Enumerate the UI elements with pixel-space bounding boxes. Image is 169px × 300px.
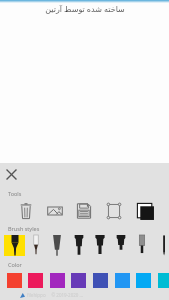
staticText: Tools xyxy=(8,190,22,197)
button[interactable]: Brush 3 xyxy=(49,235,65,256)
button[interactable]: Insert image xyxy=(42,200,68,222)
button[interactable]: Brush 5 xyxy=(92,235,108,256)
staticText: ساخته شده توسط آرتین xyxy=(45,3,125,14)
button[interactable]: Fill colour xyxy=(132,200,158,222)
button[interactable]: Brush 8 xyxy=(156,235,169,256)
staticText: filehippo © 2019-2020 ... xyxy=(27,292,84,298)
button[interactable]: Delete xyxy=(13,200,39,222)
staticText: Color xyxy=(8,261,22,268)
button[interactable]: Brush 2 xyxy=(28,235,44,256)
button[interactable]: Brush 4 xyxy=(71,235,87,256)
button[interactable]: Brush 1 xyxy=(7,235,23,256)
button[interactable]: Brush 6 xyxy=(113,235,129,256)
button[interactable]: Save xyxy=(71,200,97,222)
button[interactable]: Brush 7 xyxy=(134,235,150,256)
staticText: Brush styles xyxy=(8,225,40,232)
button[interactable]: Close xyxy=(3,166,19,182)
button[interactable]: Transform xyxy=(101,200,127,222)
